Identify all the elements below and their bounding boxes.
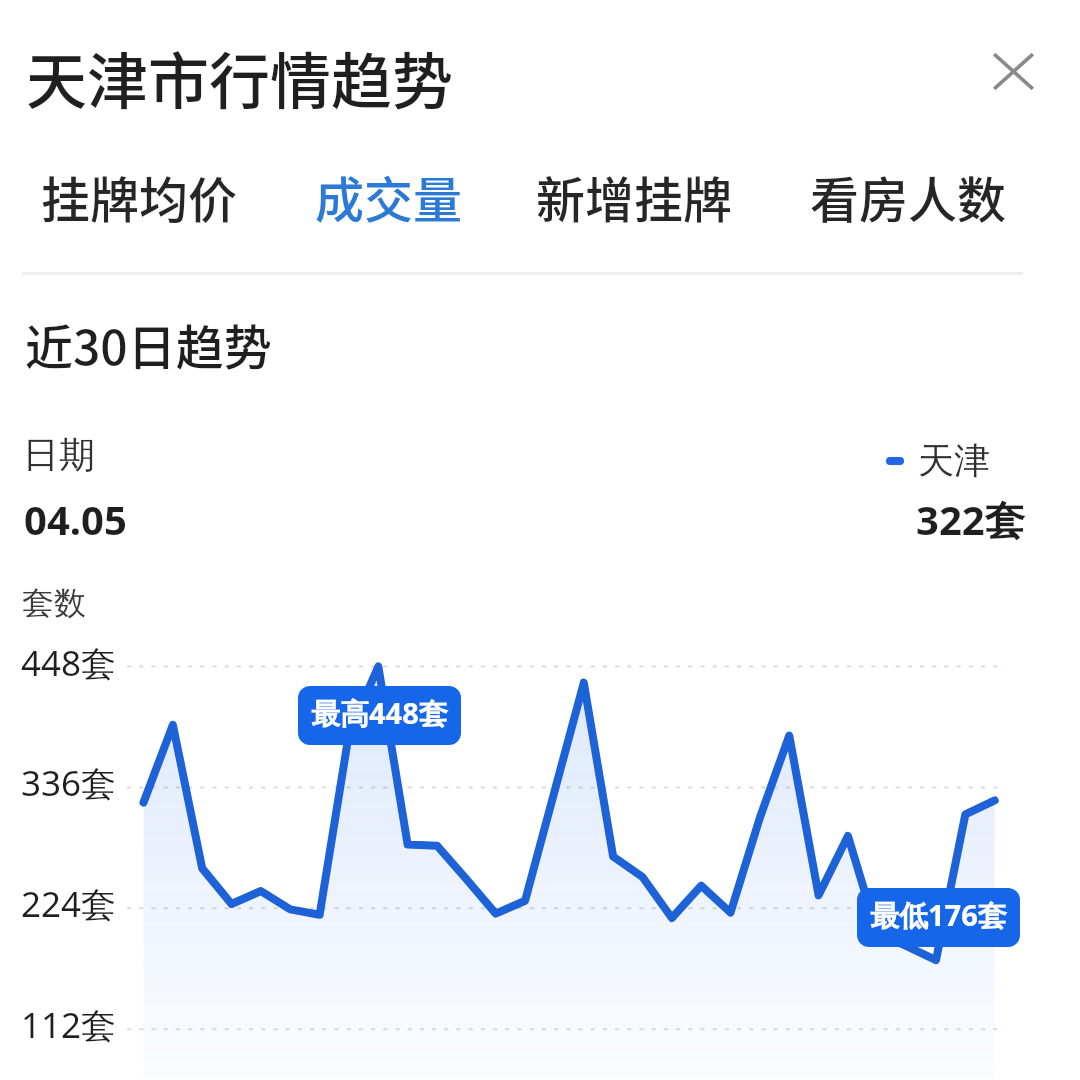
staticText: 322套 (916, 492, 1025, 547)
staticText: 天津 (918, 438, 990, 483)
staticText: 天津市行情趋势 (26, 33, 454, 121)
staticText: 成交量 (315, 161, 463, 232)
staticText: 112套 (21, 1001, 117, 1049)
button[interactable]: 看房人数 (796, 147, 1021, 246)
staticText: 挂牌均价 (41, 161, 238, 232)
staticText: 04.05 (24, 492, 127, 546)
button[interactable]: 新增挂牌 (522, 147, 747, 246)
staticText: 336套 (21, 759, 117, 807)
staticText: 套数 (22, 583, 86, 623)
staticText: 最高448套 (311, 693, 448, 733)
staticText: 最低176套 (870, 895, 1007, 935)
staticText: 224套 (21, 880, 117, 928)
button[interactable]: 成交量 (301, 147, 477, 246)
staticText: 看房人数 (810, 161, 1007, 232)
button[interactable]: 挂牌均价 (27, 147, 252, 246)
staticText: 近30日趋势 (25, 309, 272, 379)
staticText: 日期 (23, 432, 95, 477)
staticText: 新增挂牌 (536, 161, 733, 232)
staticText: 448套 (21, 639, 117, 687)
button[interactable]: Close (972, 30, 1055, 113)
